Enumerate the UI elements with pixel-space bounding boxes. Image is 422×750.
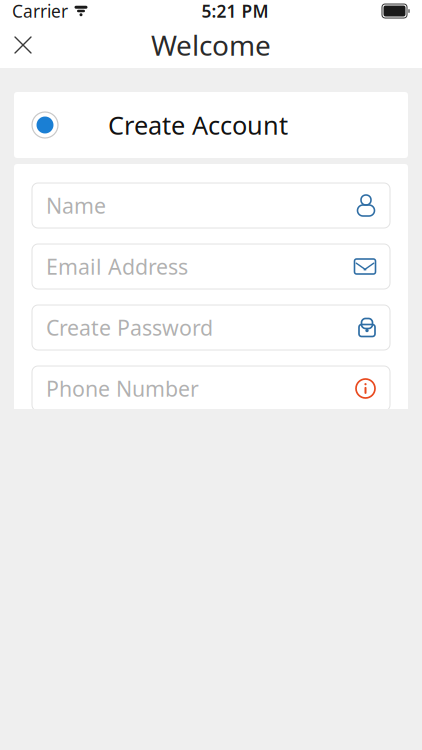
staticText: Email Address bbox=[46, 252, 188, 281]
staticText: Welcome bbox=[151, 26, 271, 64]
staticText: Create Account bbox=[108, 108, 288, 142]
staticText: Create Password bbox=[46, 313, 213, 342]
button[interactable]: Create Password bbox=[32, 305, 390, 350]
staticText: Phone Number bbox=[46, 374, 199, 403]
staticText: Name bbox=[46, 191, 106, 220]
staticText: Carrier bbox=[12, 0, 68, 22]
button[interactable]: Name bbox=[32, 183, 390, 228]
button[interactable]: Create Account bbox=[14, 92, 408, 158]
button[interactable]: Close bbox=[0, 22, 46, 68]
button[interactable]: Phone Number bbox=[32, 366, 390, 411]
button[interactable]: Email Address bbox=[32, 244, 390, 289]
staticText: 5:21 PM bbox=[201, 0, 268, 22]
